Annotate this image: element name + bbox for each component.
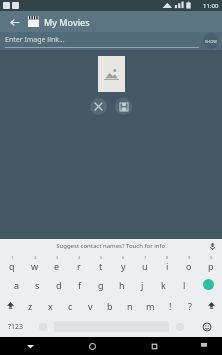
button[interactable]: Suggest contact names? Touch for info. [56,242,167,250]
button[interactable]: m [140,295,160,316]
button[interactable]: z [21,295,40,316]
staticText: s [35,279,40,291]
button[interactable]: Shift [0,295,21,316]
button[interactable]: Cancel [90,98,107,115]
staticText: 3 [56,255,59,260]
button[interactable]: 0 [200,253,222,274]
staticText: 2 [34,255,37,260]
staticText: h [119,279,125,291]
staticText: m [146,300,155,312]
button[interactable]: x [40,295,60,316]
staticText: k [161,279,166,291]
button[interactable]: SHOW [203,33,219,49]
staticText: 8 [166,255,169,260]
button[interactable]: g [90,274,111,295]
staticText: t [99,260,103,272]
button[interactable]: Period [169,316,191,337]
button[interactable]: 3 [46,253,68,274]
staticText: o [186,260,192,272]
button[interactable]: 5 [90,253,112,274]
staticText: 6 [122,255,125,260]
staticText: a [14,279,20,291]
button[interactable]: ! [160,295,180,316]
staticText: p [208,260,214,272]
button[interactable]: Recent apps [123,337,185,355]
staticText: n [127,300,133,312]
staticText: w [31,260,39,272]
staticText: q [9,260,15,272]
staticText: ! [169,300,172,312]
staticText: ?123 [8,322,24,332]
button[interactable]: c [60,295,80,316]
button[interactable]: Hide keyboard [185,337,222,355]
button[interactable]: Home [61,337,123,355]
staticText: l [183,279,186,291]
staticText: 7 [144,255,147,260]
button[interactable]: l [174,274,195,295]
button[interactable]: h [111,274,132,295]
button[interactable]: Back [0,337,61,355]
staticText: 1 [11,255,14,260]
staticText: r [77,260,81,272]
staticText: c [68,300,73,312]
button[interactable]: Comma [32,316,54,337]
button[interactable]: Voice input [207,241,217,251]
button[interactable]: 1 [0,253,23,274]
button[interactable]: ? [180,295,200,316]
staticText: i [166,260,169,272]
button[interactable]: 2 [23,253,46,274]
staticText: Enter Image link... [5,35,65,45]
button[interactable]: n [120,295,140,316]
staticText: y [121,260,126,272]
staticText: ? [188,300,192,312]
button[interactable]: d [48,274,69,295]
button[interactable]: 9 [178,253,200,274]
staticText: d [56,279,62,291]
button[interactable]: b [100,295,120,316]
staticText: SHOW [205,39,217,44]
button[interactable]: Save [115,98,132,115]
button[interactable]: 4 [68,253,90,274]
button[interactable]: ?123 [0,316,32,337]
staticText: 0 [210,255,213,260]
button[interactable]: a [6,274,27,295]
staticText: f [78,279,82,291]
staticText: x [48,300,53,312]
staticText: My Movies [44,16,90,28]
staticText: u [142,260,148,272]
button[interactable]: Enter Image link... [5,35,199,48]
button[interactable]: j [132,274,153,295]
button[interactable]: 6 [112,253,134,274]
staticText: e [54,260,60,272]
button[interactable]: Enter [197,276,220,293]
staticText: z [28,300,33,312]
staticText: 9 [188,255,191,260]
button[interactable]: 7 [134,253,156,274]
button[interactable]: v [80,295,100,316]
button[interactable]: k [153,274,174,295]
staticText: g [98,279,104,291]
staticText: b [107,300,113,312]
staticText: 11:00 [203,2,219,10]
staticText: v [88,300,93,312]
button[interactable]: 8 [156,253,178,274]
button[interactable]: Backspace [200,295,222,316]
button[interactable]: s [27,274,48,295]
button[interactable]: Back [6,14,22,30]
staticText: j [141,279,144,291]
staticText: 5 [100,255,103,260]
button[interactable]: Emoji [191,316,222,337]
button[interactable]: f [69,274,90,295]
staticText: 4 [78,255,81,260]
